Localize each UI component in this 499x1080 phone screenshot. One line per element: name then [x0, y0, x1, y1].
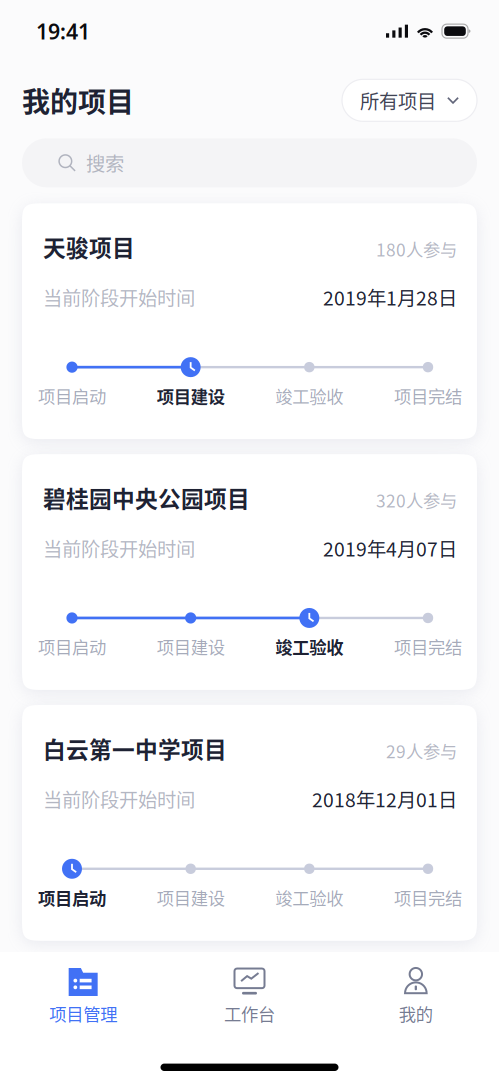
- staticText: 我的项目: [22, 80, 134, 121]
- staticText: 我的: [399, 1001, 433, 1026]
- staticText: 2019年1月28日: [323, 283, 457, 311]
- staticText: 项目完结: [394, 885, 462, 910]
- staticText: 19:41: [36, 17, 90, 45]
- button[interactable]: 碧桂园中央公园项目: [22, 454, 477, 690]
- staticText: 竣工验收: [275, 885, 343, 910]
- staticText: 天骏项目: [43, 230, 135, 263]
- staticText: 项目管理: [49, 1001, 117, 1026]
- staticText: 搜索: [86, 149, 124, 177]
- staticText: 29人参与: [386, 738, 457, 763]
- button[interactable]: 项目管理: [0, 968, 166, 1026]
- staticText: 项目完结: [394, 383, 462, 408]
- staticText: 2019年4月07日: [323, 534, 457, 562]
- staticText: 当前阶段开始时间: [43, 534, 195, 562]
- button[interactable]: 搜索: [22, 138, 477, 187]
- staticText: 竣工验收: [275, 634, 343, 659]
- staticText: 白云第一中学项目: [43, 732, 227, 765]
- button[interactable]: 我的: [333, 968, 499, 1026]
- staticText: 碧桂园中央公园项目: [43, 481, 250, 514]
- staticText: 所有项目: [360, 86, 436, 114]
- staticText: 工作台: [224, 1001, 275, 1026]
- staticText: 当前阶段开始时间: [43, 283, 195, 311]
- staticText: 项目启动: [38, 885, 106, 910]
- staticText: 320人参与: [376, 487, 457, 512]
- staticText: 项目启动: [38, 634, 106, 659]
- staticText: 竣工验收: [275, 383, 343, 408]
- button[interactable]: 工作台: [166, 968, 333, 1026]
- button[interactable]: 白云第一中学项目: [22, 705, 477, 941]
- staticText: 项目建设: [157, 885, 225, 910]
- staticText: 2018年12月01日: [312, 785, 457, 813]
- staticText: 项目完结: [394, 634, 462, 659]
- staticText: 180人参与: [376, 236, 457, 262]
- staticText: 项目建设: [157, 634, 225, 659]
- staticText: 项目启动: [38, 383, 106, 408]
- staticText: 当前阶段开始时间: [43, 785, 195, 813]
- staticText: 项目建设: [157, 383, 225, 408]
- button[interactable]: 天骏项目: [22, 203, 477, 439]
- button[interactable]: 所有项目: [342, 79, 477, 121]
